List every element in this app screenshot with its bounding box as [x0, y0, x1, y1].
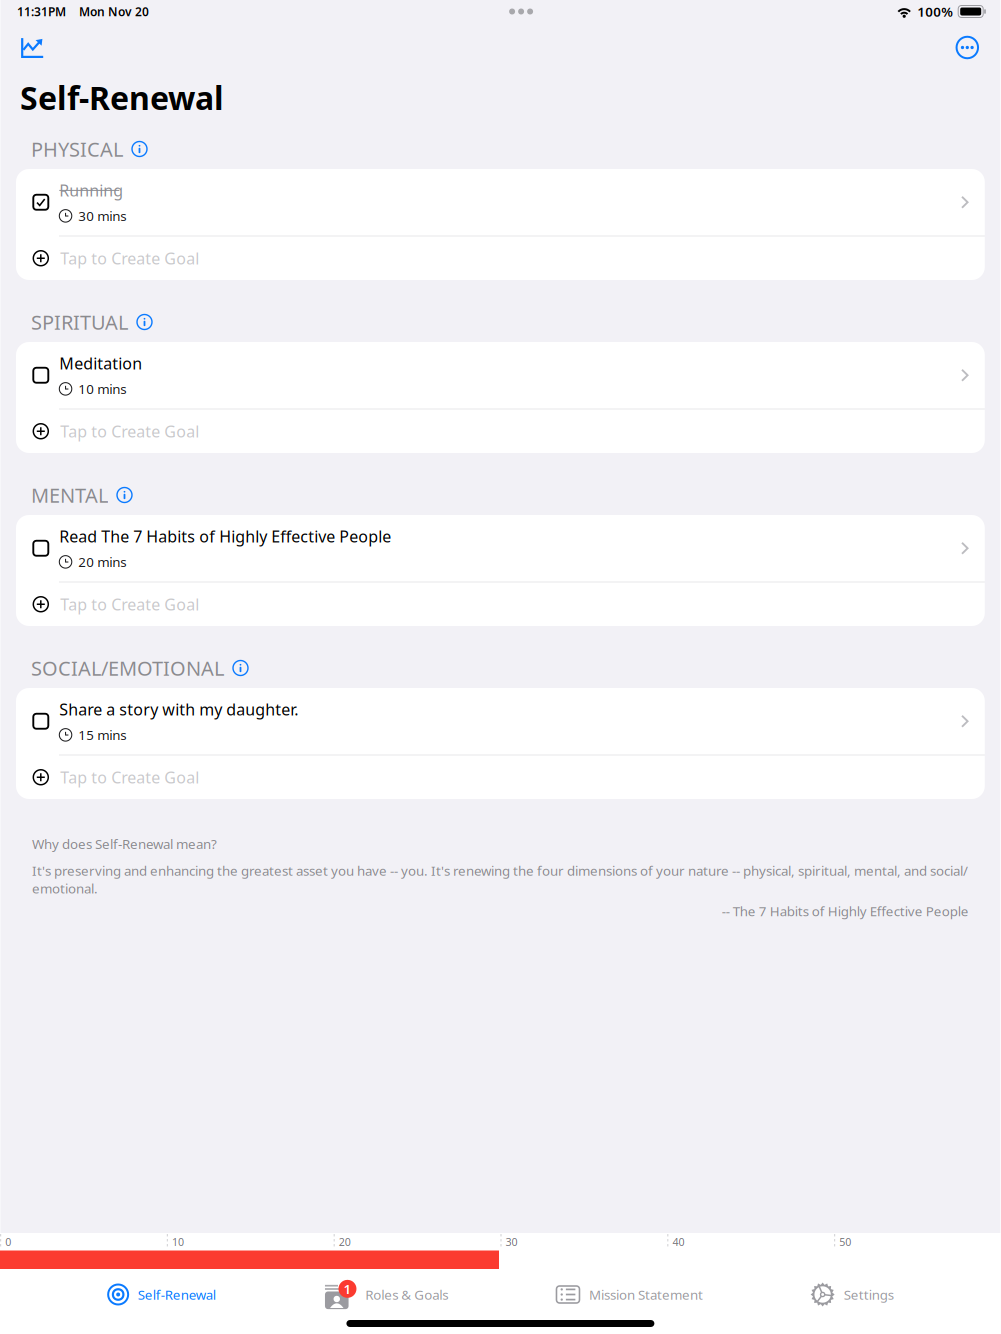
button[interactable]: Tap to Create Goal [16, 582, 985, 626]
button[interactable]: Tap to Create Goal [16, 409, 985, 453]
button[interactable]: About MENTAL [108, 483, 137, 506]
button[interactable]: About SOCIAL/EMOTIONAL [224, 656, 253, 679]
staticText: Why does Self-Renewal mean? [32, 835, 217, 853]
staticText: PHYSICAL [31, 136, 123, 162]
button[interactable]: About PHYSICAL [123, 137, 152, 160]
staticText: Running [59, 180, 123, 201]
button[interactable]: Meditation [16, 342, 985, 408]
staticText: Mon Nov 20 [79, 3, 149, 19]
staticText: Roles & Goals [365, 1286, 448, 1303]
staticText: SOCIAL/EMOTIONAL [31, 655, 224, 681]
staticText: Tap to Create Goal [60, 594, 199, 615]
button[interactable]: Settings [810, 1271, 894, 1317]
button[interactable]: Running [16, 169, 985, 235]
button[interactable]: Read The 7 Habits of Highly Effective Pe… [16, 515, 985, 581]
button[interactable]: Tap to Create Goal [16, 755, 985, 799]
staticText: Self-Renewal [20, 76, 224, 119]
staticText: Tap to Create Goal [60, 421, 199, 442]
staticText: Tap to Create Goal [60, 248, 199, 269]
staticText: 30 mins [78, 207, 126, 225]
button[interactable]: Share a story with my daughter. [16, 688, 985, 754]
staticText: 30 [506, 1235, 518, 1249]
staticText: Tap to Create Goal [60, 767, 199, 788]
staticText: 15 mins [78, 726, 126, 744]
staticText: 1 [343, 1280, 351, 1298]
staticText: 20 [339, 1235, 351, 1249]
staticText: Read The 7 Habits of Highly Effective Pe… [59, 526, 391, 547]
button[interactable]: Self-Renewal [107, 1271, 216, 1317]
staticText: 100% [917, 3, 953, 20]
staticText: SPIRITUAL [31, 309, 128, 335]
staticText: -- The 7 Habits of Highly Effective Peop… [722, 902, 969, 920]
staticText: Share a story with my daughter. [59, 699, 298, 720]
staticText: 11:31PM [17, 3, 66, 19]
button[interactable]: Tap to Create Goal [16, 236, 985, 280]
staticText: MENTAL [31, 482, 108, 508]
staticText: Self-Renewal [138, 1286, 216, 1303]
staticText: 0 [5, 1235, 11, 1249]
button[interactable]: Mission Statement [555, 1271, 703, 1317]
staticText: 40 [672, 1235, 684, 1249]
button[interactable]: More options [950, 24, 985, 65]
staticText: 10 mins [78, 380, 126, 398]
staticText: It's preserving and enhancing the greate… [32, 862, 968, 897]
button[interactable]: 1 [323, 1271, 448, 1317]
staticText: Mission Statement [589, 1286, 703, 1303]
staticText: 20 mins [78, 553, 126, 571]
staticText: 10 [172, 1235, 184, 1249]
staticText: Meditation [59, 353, 142, 374]
button[interactable]: Progress chart [14, 23, 51, 65]
button[interactable]: About SPIRITUAL [128, 310, 157, 333]
staticText: Settings [844, 1286, 894, 1303]
staticText: 50 [839, 1235, 851, 1249]
